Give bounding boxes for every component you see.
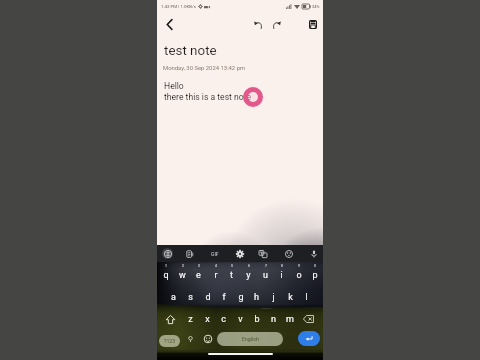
staticText: b (254, 314, 260, 325)
button[interactable]: Stickers (282, 247, 295, 260)
button[interactable]: 8 (273, 262, 290, 283)
staticText: a (171, 292, 176, 303)
button[interactable]: f (215, 288, 232, 306)
button[interactable]: Settings (233, 247, 246, 260)
button[interactable]: d (199, 288, 216, 306)
staticText: Hello (164, 81, 184, 91)
staticText: 1 (165, 264, 167, 268)
button[interactable]: v (232, 310, 249, 328)
staticText: 3 (198, 264, 200, 268)
staticText: y (246, 270, 251, 281)
staticText: 34% (312, 4, 320, 9)
staticText: GIF (211, 251, 219, 257)
button[interactable]: Enter (298, 331, 320, 346)
staticText: j (272, 292, 275, 303)
staticText: q (163, 270, 169, 281)
button[interactable]: k (282, 288, 299, 306)
staticText: o (296, 270, 302, 281)
staticText: Monday, 30 Sep 2024 13:42 pm (163, 65, 246, 72)
button[interactable]: Undo (250, 16, 267, 33)
button[interactable]: g (232, 288, 249, 306)
staticText: 1:43 PM | 1.0KB/s (161, 4, 197, 9)
button[interactable]: Google Assistant (162, 248, 173, 259)
button[interactable]: 9 (290, 262, 307, 283)
button[interactable]: m (281, 310, 298, 328)
button[interactable]: English (217, 332, 283, 346)
staticText: u (263, 270, 268, 281)
staticText: 6 (248, 264, 250, 268)
staticText: i (280, 270, 283, 281)
staticText: s (188, 292, 193, 303)
staticText: c (221, 314, 226, 325)
staticText: English (242, 336, 259, 342)
button[interactable]: c (215, 310, 232, 328)
staticText: there this is a test note (164, 92, 252, 102)
button[interactable]: Clipboard (183, 247, 196, 260)
staticText: v (238, 314, 243, 325)
button[interactable]: b (248, 310, 265, 328)
button[interactable]: Voice typing (184, 333, 197, 346)
button[interactable]: Save (304, 16, 321, 33)
staticText: e (196, 270, 201, 281)
staticText: d (205, 292, 211, 303)
staticText: 9 (298, 264, 300, 268)
staticText: n (271, 314, 276, 325)
staticText: test note (164, 43, 217, 59)
button[interactable]: 3 (190, 262, 207, 283)
staticText: k (288, 292, 293, 303)
staticText: w (179, 270, 186, 281)
button[interactable]: ?123 (159, 335, 180, 347)
staticText: 7 (265, 264, 267, 268)
button[interactable]: GIF (208, 247, 221, 260)
button[interactable]: a (165, 288, 182, 306)
staticText: 5 (231, 264, 233, 268)
staticText: l (305, 292, 308, 303)
staticText: f (222, 292, 226, 303)
button[interactable]: 2 (174, 262, 191, 283)
button[interactable]: l (298, 288, 315, 306)
staticText: 4 (215, 264, 217, 268)
button[interactable]: 1 (157, 262, 174, 283)
staticText: ?123 (164, 338, 176, 344)
button[interactable]: 7 (257, 262, 274, 283)
staticText: x (205, 314, 210, 325)
staticText: h (254, 292, 259, 303)
button[interactable]: j (265, 288, 282, 306)
button[interactable]: Voice input (307, 247, 320, 260)
staticText: 2 (182, 264, 184, 268)
staticText: 0 (314, 264, 316, 268)
button[interactable]: s (182, 288, 199, 306)
button[interactable]: 4 (207, 262, 224, 283)
button[interactable]: Emoji (201, 332, 214, 345)
button[interactable]: h (248, 288, 265, 306)
button[interactable]: Back (159, 14, 179, 34)
button[interactable]: 0 (306, 262, 323, 283)
staticText: m (286, 314, 294, 325)
staticText: r (214, 270, 218, 281)
button[interactable]: 6 (240, 262, 257, 283)
button[interactable]: Redo (268, 16, 285, 33)
button[interactable]: Shift (158, 310, 182, 328)
staticText: z (188, 314, 193, 325)
staticText: p (312, 270, 318, 281)
staticText: 8 (281, 264, 283, 268)
staticText: t (230, 270, 233, 281)
button[interactable]: Backspace (296, 310, 320, 328)
button[interactable]: z (182, 310, 199, 328)
button[interactable]: 5 (223, 262, 240, 283)
staticText: g (238, 292, 244, 303)
button[interactable]: Translate (256, 247, 269, 260)
button[interactable]: n (265, 310, 282, 328)
button[interactable]: x (199, 310, 216, 328)
